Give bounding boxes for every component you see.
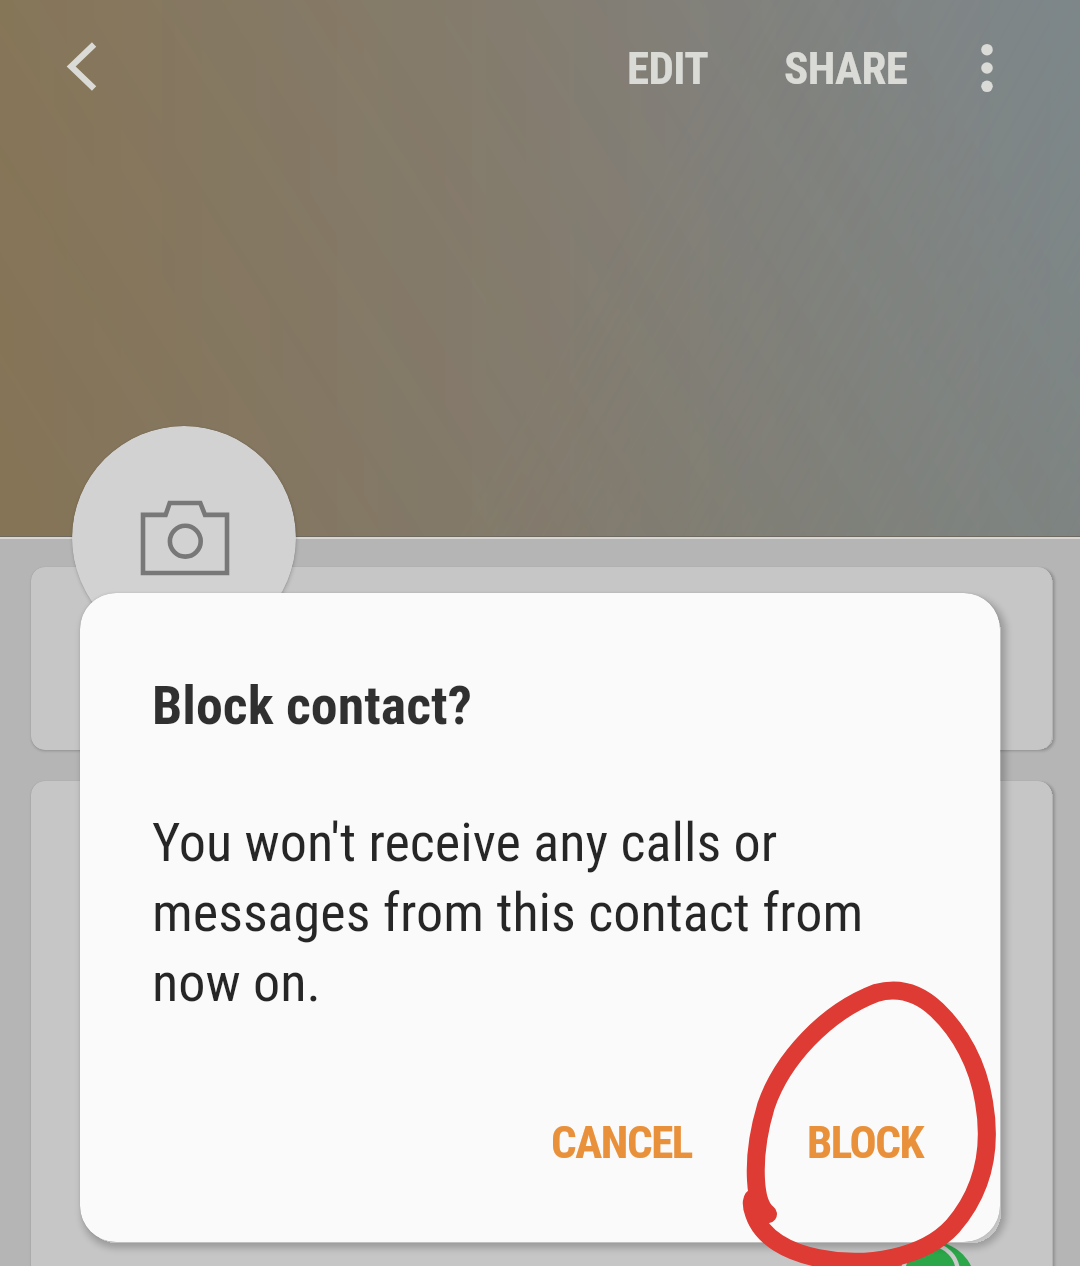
button[interactable]: Change photo xyxy=(72,426,296,650)
button[interactable]: BLOCK xyxy=(780,1096,950,1188)
button[interactable]: WhatsApp xyxy=(885,1241,976,1266)
button[interactable]: More options xyxy=(923,0,1051,136)
staticText: EDIT xyxy=(627,42,709,95)
button[interactable]: SHARE xyxy=(778,14,914,122)
button[interactable]: Back xyxy=(14,0,126,132)
staticText: CANCEL xyxy=(551,1116,692,1169)
staticText: BLOCK xyxy=(807,1116,924,1169)
staticText: You won't receive any calls or messages … xyxy=(152,811,942,1015)
staticText: Block contact? xyxy=(152,674,472,737)
button[interactable]: EDIT xyxy=(600,14,736,122)
staticText: SHARE xyxy=(784,42,908,95)
button[interactable]: CANCEL xyxy=(526,1096,716,1188)
